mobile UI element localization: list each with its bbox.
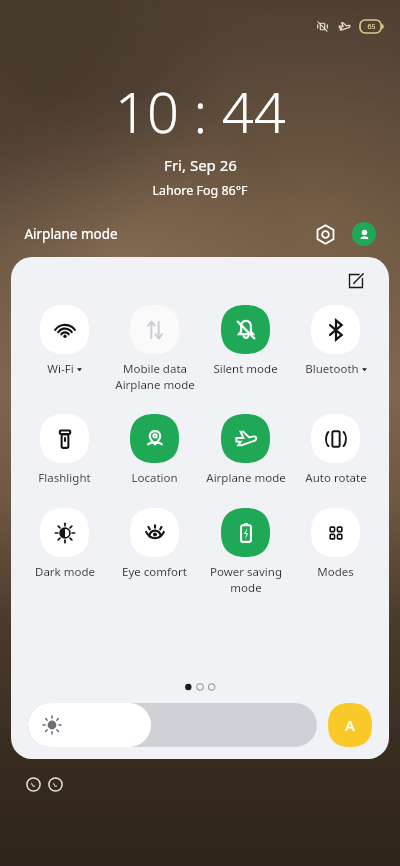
staticText: 65	[367, 22, 376, 32]
button[interactable]: Flashlight	[23, 414, 106, 486]
staticText: Power saving	[210, 564, 282, 580]
staticText: Bluetooth	[305, 361, 359, 377]
button[interactable]: Location	[113, 414, 196, 486]
staticText: mode	[230, 580, 262, 596]
button[interactable]: Brightness	[28, 703, 317, 747]
staticText: Mobile data	[123, 361, 187, 377]
staticText: Dark mode	[35, 564, 95, 580]
button[interactable]: Power saving	[204, 508, 287, 596]
button[interactable]: Wi-Fi	[23, 305, 106, 377]
button[interactable]: Edit tiles	[341, 266, 371, 296]
button[interactable]: Modes	[294, 508, 377, 580]
button[interactable]: Silent mode	[204, 305, 287, 377]
staticText: Silent mode	[213, 361, 278, 377]
staticText: Flashlight	[38, 470, 91, 486]
button[interactable]: Dark mode	[23, 508, 106, 580]
staticText: Fri, Sep 26	[164, 155, 237, 175]
staticText: Modes	[317, 564, 354, 580]
button[interactable]: Settings	[312, 221, 338, 247]
button[interactable]: User profile	[352, 222, 376, 246]
button[interactable]: Auto brightness	[328, 703, 372, 747]
staticText: Eye comfort	[122, 564, 187, 580]
staticText: Wi-Fi	[47, 361, 74, 377]
button[interactable]: Mobile data	[113, 305, 196, 393]
staticText: Airplane mode	[24, 225, 118, 243]
staticText: Airplane mode	[115, 377, 195, 393]
staticText: Lahore Fog 86°F	[152, 182, 248, 199]
staticText: Airplane mode	[206, 470, 286, 486]
button[interactable]: Bluetooth	[294, 305, 377, 377]
button[interactable]: Auto rotate	[294, 414, 377, 486]
staticText: A	[345, 715, 355, 735]
staticText: Auto rotate	[305, 470, 367, 486]
button[interactable]: Airplane mode	[204, 414, 287, 486]
button[interactable]: Eye comfort	[113, 508, 196, 580]
staticText: 10 : 44	[115, 73, 286, 149]
staticText: Location	[131, 470, 178, 486]
